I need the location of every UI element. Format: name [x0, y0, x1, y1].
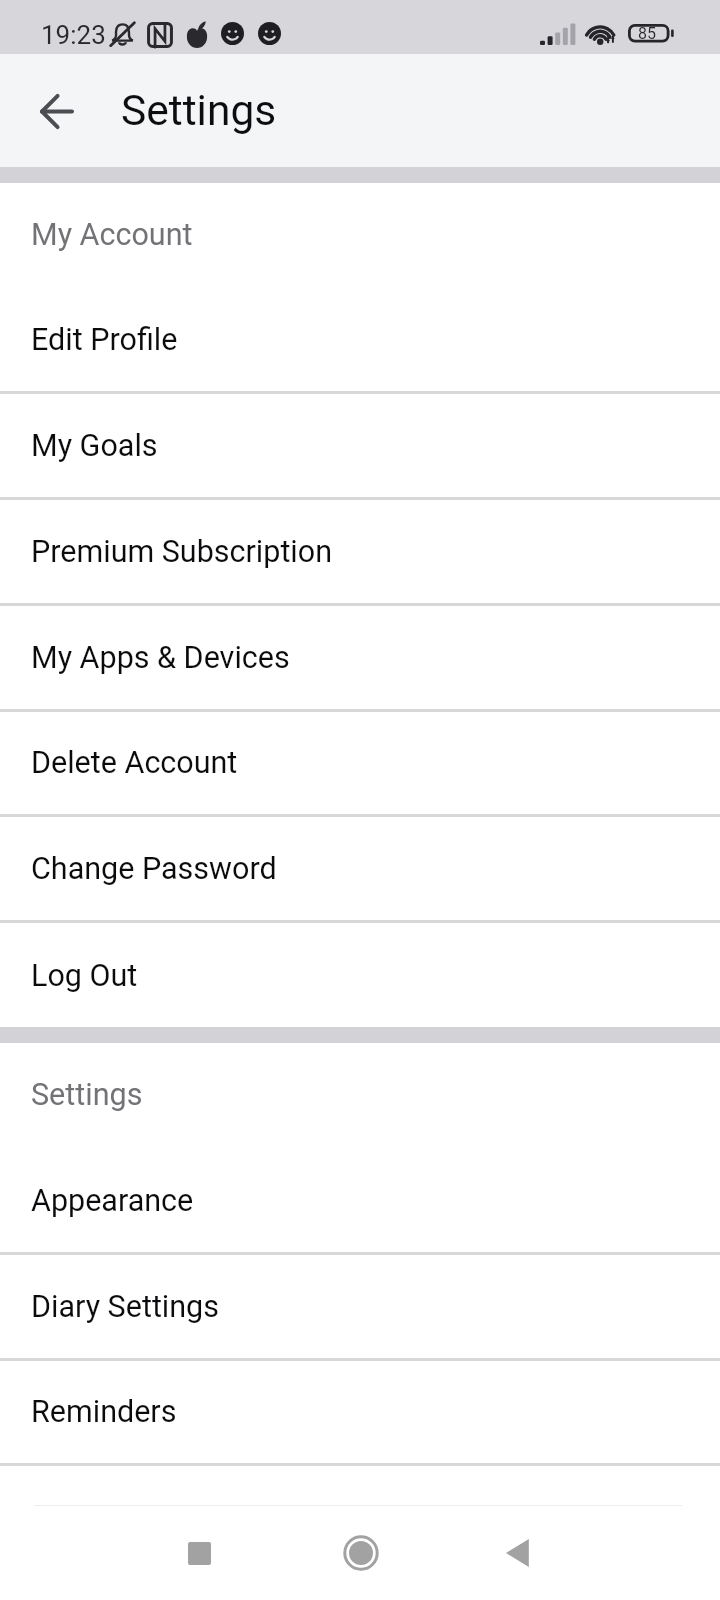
button[interactable]: Delete Account: [0, 711, 720, 815]
button[interactable]: Back: [16, 71, 96, 151]
button[interactable]: Diary Settings: [0, 1255, 720, 1359]
staticText: My Account: [31, 217, 193, 253]
staticText: Delete Account: [31, 745, 238, 781]
button[interactable]: Recent apps: [157, 1511, 241, 1595]
staticText: Appearance: [31, 1183, 194, 1219]
staticText: 19:23: [41, 20, 106, 50]
button[interactable]: My Goals: [0, 394, 720, 498]
staticText: My Goals: [31, 428, 158, 464]
staticText: Premium Subscription: [31, 534, 333, 570]
staticText: Settings: [121, 86, 277, 136]
button[interactable]: Appearance: [0, 1149, 720, 1253]
button[interactable]: Home: [319, 1511, 403, 1595]
staticText: 85: [638, 24, 656, 43]
button[interactable]: Premium Subscription: [0, 500, 720, 604]
staticText: Edit Profile: [31, 322, 178, 358]
button[interactable]: My Apps & Devices: [0, 606, 720, 710]
button[interactable]: Log Out: [0, 923, 720, 1028]
button[interactable]: Reminders: [0, 1360, 720, 1464]
staticText: Reminders: [31, 1394, 177, 1430]
button[interactable]: Back: [476, 1511, 560, 1595]
staticText: My Apps & Devices: [31, 640, 290, 676]
button[interactable]: Change Password: [0, 817, 720, 921]
staticText: Settings: [31, 1077, 143, 1113]
staticText: Diary Settings: [31, 1289, 219, 1325]
staticText: Log Out: [31, 958, 138, 994]
staticText: Change Password: [31, 851, 277, 887]
button[interactable]: Edit Profile: [0, 288, 720, 392]
